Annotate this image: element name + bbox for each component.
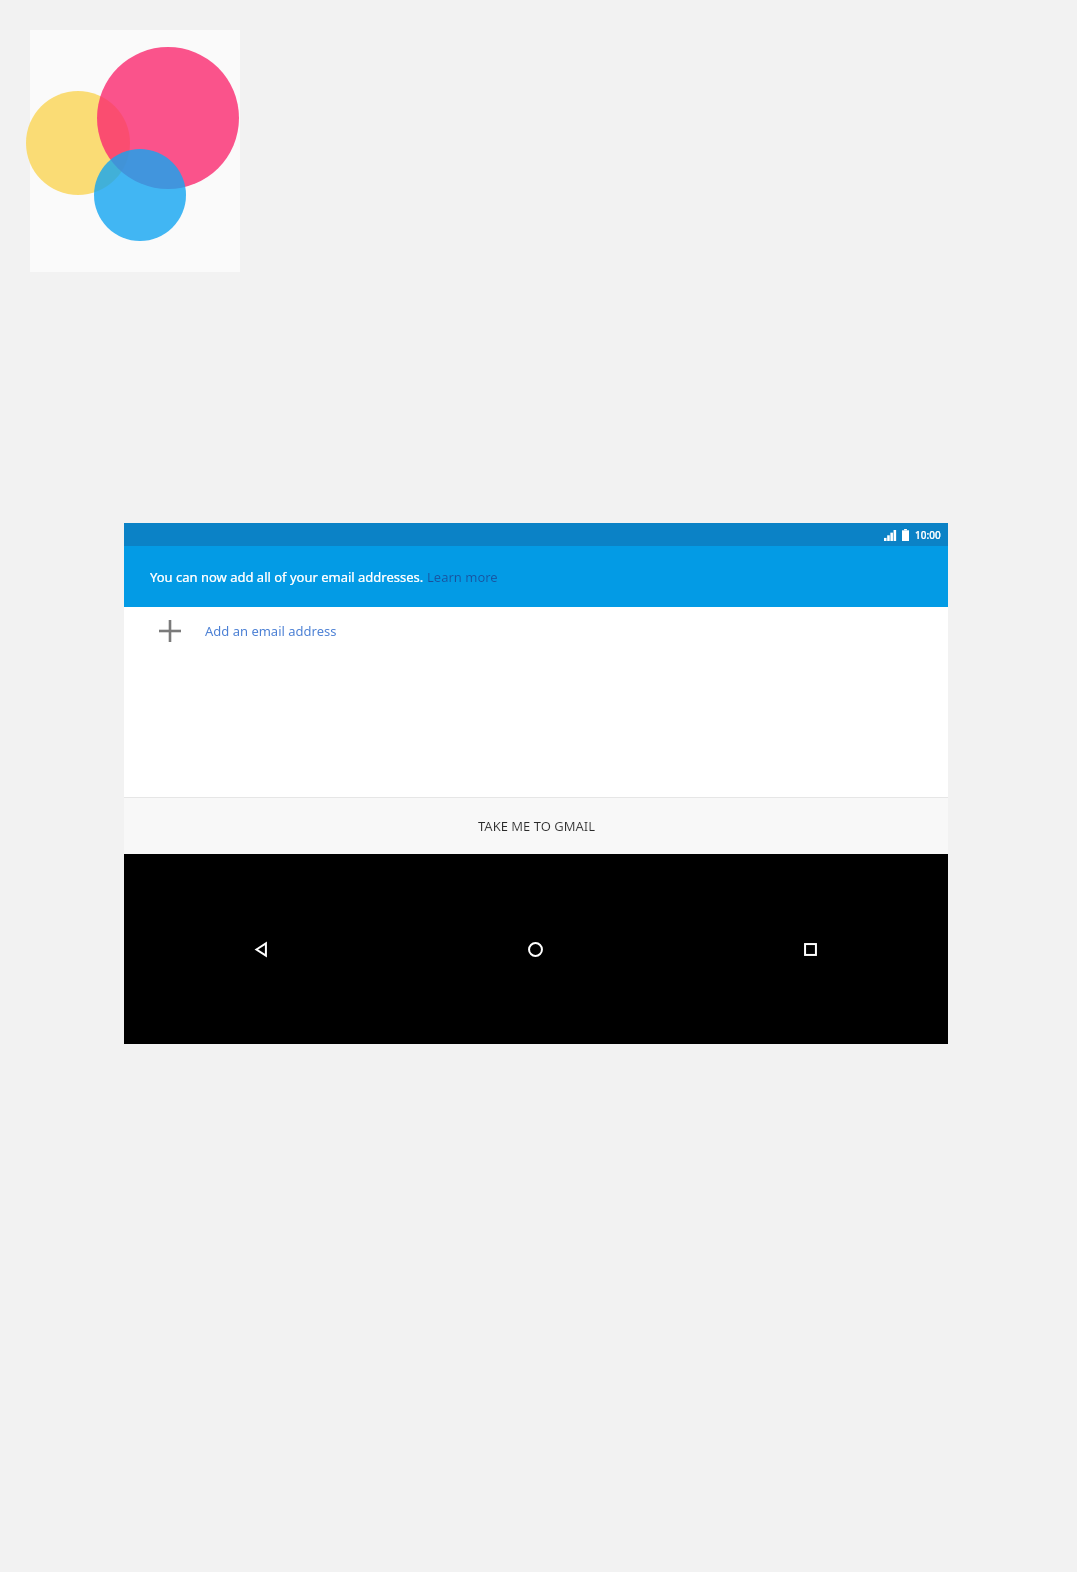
staticText: 10:00 — [915, 528, 941, 542]
button[interactable]: Add an email address — [124, 607, 948, 655]
button[interactable]: Home — [398, 854, 673, 1044]
staticText: You can now add all of your email addres… — [150, 568, 427, 586]
button[interactable]: TAKE ME TO GMAIL — [124, 798, 948, 854]
staticText: TAKE ME TO GMAIL — [478, 817, 595, 835]
button[interactable]: Back — [124, 854, 398, 1044]
button[interactable]: Learn more — [427, 568, 498, 586]
staticText: Add an email address — [205, 622, 337, 640]
staticText: Learn more — [427, 568, 498, 586]
button[interactable]: Recent apps — [673, 854, 948, 1044]
